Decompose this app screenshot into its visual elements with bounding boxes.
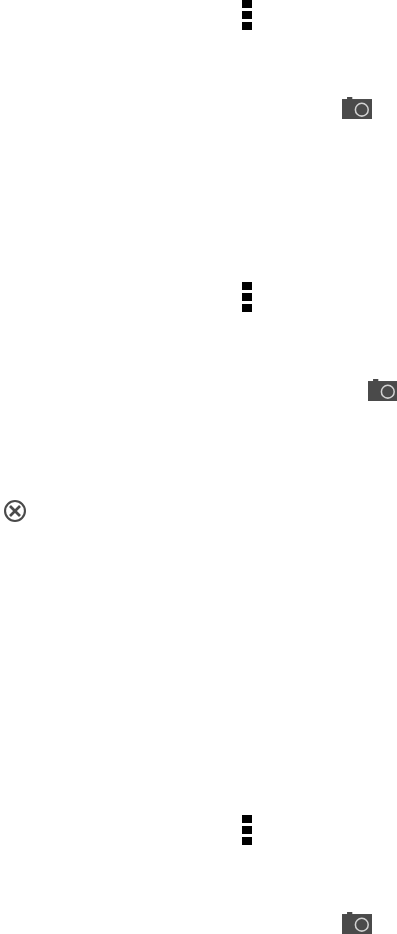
button[interactable]: Third story image — [342, 912, 372, 934]
button[interactable]: More options for Second story — [242, 282, 252, 312]
button[interactable]: Third story — [0, 815, 397, 934]
button[interactable]: Close — [4, 500, 26, 522]
button[interactable]: First story image — [342, 97, 372, 119]
button[interactable]: More options for First story — [242, 0, 252, 30]
button[interactable]: More options for Third story — [242, 815, 252, 845]
button[interactable]: Second story image — [368, 379, 397, 401]
button[interactable]: Second story — [0, 282, 397, 815]
button[interactable]: First story — [0, 0, 397, 282]
